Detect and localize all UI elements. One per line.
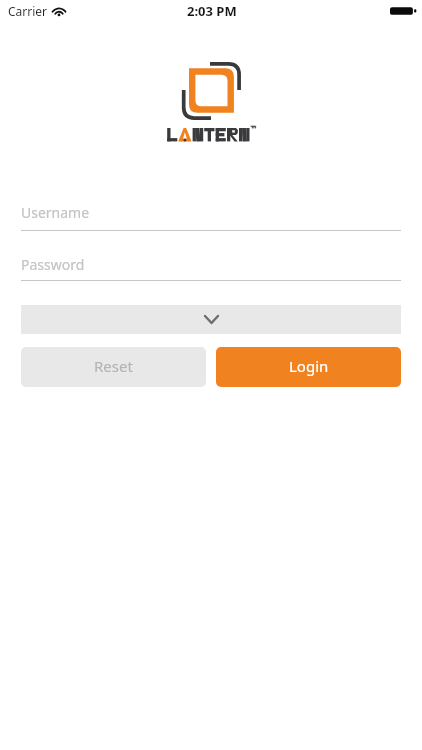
button[interactable]: Password xyxy=(21,255,401,288)
button[interactable]: Select server xyxy=(21,305,401,334)
staticText: Password xyxy=(21,255,85,274)
other: LANTERN xyxy=(167,128,255,144)
staticText: Login xyxy=(289,356,329,376)
button[interactable]: Reset xyxy=(21,347,206,387)
staticText: Carrier xyxy=(8,3,48,19)
other: Wi-Fi xyxy=(52,6,66,17)
staticText: Reset xyxy=(94,356,133,376)
other: Battery full xyxy=(390,5,416,17)
staticText: Username xyxy=(21,203,90,222)
button[interactable]: Login xyxy=(216,347,401,387)
button[interactable]: Username xyxy=(21,203,401,238)
staticText: 2:03 PM xyxy=(187,2,237,20)
